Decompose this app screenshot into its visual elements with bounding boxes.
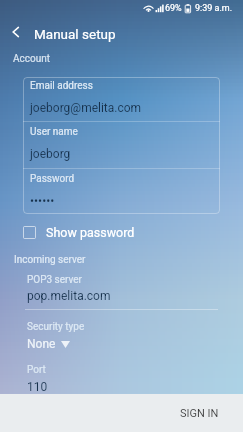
- staticText: Incoming server: [14, 254, 86, 266]
- staticText: Show password: [46, 225, 135, 240]
- staticText: Password: [30, 173, 75, 185]
- staticText: Port: [27, 364, 46, 376]
- staticText: ••••••: [30, 194, 55, 208]
- button[interactable]: Show password: [23, 225, 135, 240]
- staticText: 69%: [165, 3, 182, 14]
- staticText: None: [27, 337, 56, 351]
- staticText: Security type: [27, 321, 85, 333]
- staticText: pop.melita.com: [27, 289, 111, 303]
- staticText: Manual setup: [34, 26, 116, 42]
- button[interactable]: None: [27, 336, 70, 352]
- staticText: 9:39 a.m.: [195, 3, 233, 14]
- staticText: joeborg@melita.com: [30, 101, 142, 115]
- staticText: User name: [30, 126, 78, 138]
- staticText: 110: [27, 380, 48, 394]
- button[interactable]: SIGN IN: [156, 394, 243, 432]
- staticText: joeborg: [30, 147, 71, 161]
- button[interactable]: Navigate up: [3, 19, 29, 45]
- staticText: Email address: [30, 80, 93, 92]
- staticText: SIGN IN: [180, 407, 219, 420]
- staticText: Account: [13, 53, 51, 65]
- staticText: POP3 server: [27, 274, 83, 286]
